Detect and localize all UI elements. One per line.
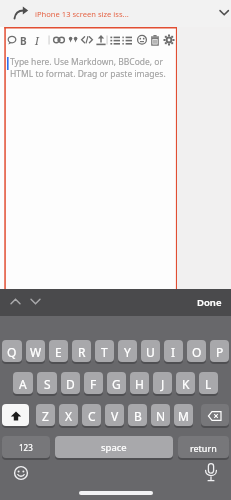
staticText: U [146, 344, 155, 360]
button[interactable] [30, 298, 41, 306]
staticText: space [101, 441, 127, 454]
staticText: W [30, 344, 42, 360]
staticText: Z [42, 408, 49, 424]
staticText: D [66, 376, 75, 392]
button[interactable]: Done [197, 296, 222, 309]
button[interactable] [135, 33, 149, 47]
button[interactable] [13, 465, 29, 481]
button[interactable] [80, 33, 94, 47]
button[interactable]: H [130, 372, 149, 395]
staticText: K [182, 376, 190, 392]
staticText: return [190, 442, 217, 454]
staticText: R [78, 344, 86, 360]
button[interactable] [162, 33, 176, 47]
button[interactable] [108, 33, 122, 47]
button[interactable]: I [164, 340, 183, 363]
button[interactable] [42, 33, 56, 47]
staticText: T [101, 344, 108, 360]
button[interactable]: space [55, 436, 173, 459]
staticText: X [65, 408, 73, 424]
staticText: Done [197, 296, 222, 309]
button[interactable]: iPhone 13 screen size iss... [35, 9, 129, 19]
button[interactable]: D [61, 372, 80, 395]
button[interactable]: G [107, 372, 126, 395]
staticText: Q [7, 344, 17, 360]
staticText: H [135, 376, 144, 392]
staticText: E [55, 344, 62, 360]
button[interactable]: S [37, 372, 57, 395]
staticText: S [44, 376, 51, 392]
staticText: I [171, 344, 176, 360]
button[interactable]: X [59, 404, 78, 427]
button[interactable]: L [199, 372, 218, 395]
staticText: Y [124, 344, 131, 360]
button[interactable]: E [49, 340, 68, 363]
staticText: C [88, 408, 96, 424]
button[interactable] [201, 404, 229, 427]
button[interactable]: Y [118, 340, 137, 363]
button[interactable] [120, 33, 134, 47]
button[interactable]: return [178, 436, 229, 459]
staticText: F [90, 376, 97, 392]
button[interactable] [66, 33, 80, 47]
button[interactable] [94, 33, 108, 47]
button[interactable]: J [153, 372, 172, 395]
button[interactable]: Q [2, 340, 22, 363]
staticText: 123 [19, 442, 33, 453]
button[interactable] [202, 462, 220, 484]
button[interactable]: C [82, 404, 101, 427]
button[interactable]: F [84, 372, 103, 395]
button[interactable]: N [151, 404, 170, 427]
button[interactable] [5, 33, 19, 47]
staticText: Type here. Use Markdown, BBCode, or HTML… [10, 56, 182, 80]
button[interactable]: K [176, 372, 195, 395]
button[interactable]: R [72, 340, 91, 363]
button[interactable]: W [26, 340, 45, 363]
staticText: B [134, 408, 142, 424]
button[interactable]: 123 [2, 436, 50, 459]
button[interactable]: P [210, 340, 229, 363]
button[interactable] [148, 33, 162, 47]
staticText: O [192, 344, 202, 360]
staticText: G [112, 376, 121, 392]
button[interactable] [10, 298, 21, 306]
button[interactable] [2, 404, 29, 427]
button[interactable]: U [141, 340, 160, 363]
button[interactable] [100, 33, 114, 47]
button[interactable] [52, 33, 66, 47]
button[interactable] [13, 4, 31, 22]
staticText: L [205, 376, 212, 392]
staticText: V [111, 408, 119, 424]
staticText: P [216, 344, 224, 360]
button[interactable]: V [105, 404, 124, 427]
staticText: M [178, 408, 189, 424]
button[interactable]: T [95, 340, 114, 363]
button[interactable]: O [187, 340, 206, 363]
button[interactable]: Z [36, 404, 55, 427]
staticText: J [161, 376, 165, 392]
button[interactable]: A [13, 372, 33, 395]
button[interactable]: B [20, 34, 27, 48]
staticText: A [19, 376, 27, 392]
button[interactable]: I [35, 34, 39, 48]
staticText: N [156, 408, 166, 424]
button[interactable]: M [174, 404, 193, 427]
button[interactable]: B [128, 404, 147, 427]
button[interactable] [219, 9, 231, 21]
